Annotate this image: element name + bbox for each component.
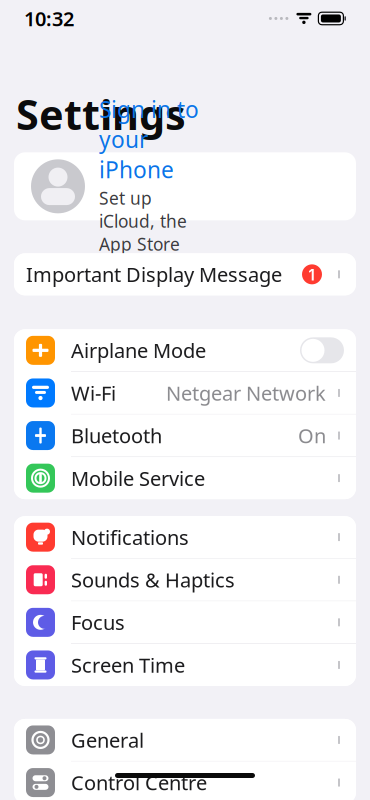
staticText: 10:32 xyxy=(24,5,74,32)
button[interactable]: Sign in to your iPhone xyxy=(14,152,356,220)
staticText: Set up iCloud, the App Store and more. xyxy=(99,186,187,279)
staticText: Notifications xyxy=(71,524,189,550)
button[interactable]: Wi-Fi xyxy=(14,372,356,414)
button[interactable]: General xyxy=(14,719,356,761)
staticText: Mobile Service xyxy=(71,465,205,491)
button[interactable]: Important Display Message xyxy=(14,253,356,295)
staticText: Bluetooth xyxy=(71,422,162,449)
button[interactable]: Bluetooth xyxy=(14,414,356,456)
staticText: Wi-Fi xyxy=(71,380,116,406)
staticText: Settings xyxy=(16,86,186,141)
button[interactable]: Airplane Mode xyxy=(14,329,356,371)
staticText: Important Display Message xyxy=(26,261,282,288)
staticText: Focus xyxy=(71,609,125,636)
button[interactable]: Screen Time xyxy=(14,644,356,686)
button[interactable]: Control Centre xyxy=(14,761,356,800)
staticText: Airplane Mode xyxy=(71,337,206,364)
button[interactable]: Mobile Service xyxy=(14,457,356,499)
button[interactable]: Sounds & Haptics xyxy=(14,559,356,601)
staticText: Sign in to your iPhone xyxy=(99,94,199,184)
staticText: 1 xyxy=(307,264,316,285)
button[interactable]: Focus xyxy=(14,601,356,643)
staticText: Netgear Network xyxy=(166,380,326,406)
button[interactable]: Notifications xyxy=(14,516,356,558)
staticText: On xyxy=(298,422,326,449)
staticText: Control Centre xyxy=(71,769,207,796)
staticText: Sounds & Haptics xyxy=(71,566,235,593)
staticText: General xyxy=(71,727,144,753)
staticText: Screen Time xyxy=(71,652,185,678)
